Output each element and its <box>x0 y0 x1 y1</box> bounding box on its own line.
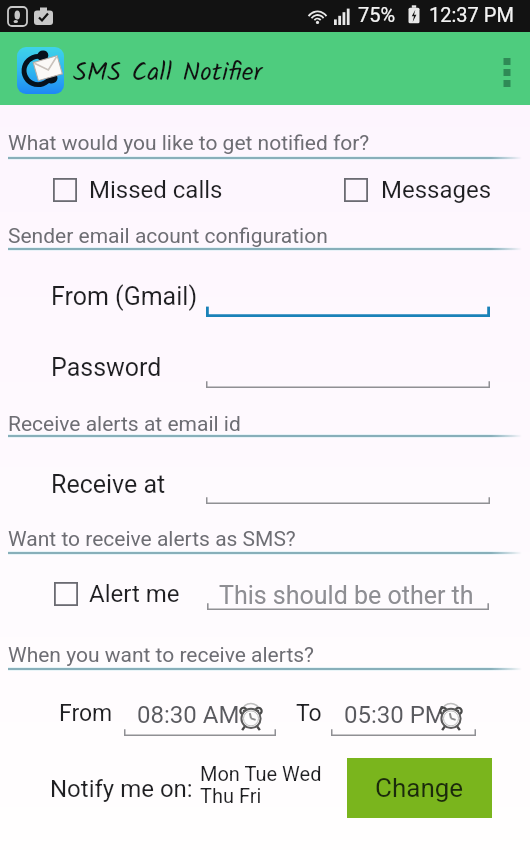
staticText: Password <box>51 353 162 382</box>
staticText: Receive at <box>51 470 166 499</box>
staticText: From <box>59 700 113 727</box>
staticText: Mon Tue Wed Thu Fri <box>200 762 326 808</box>
staticText: Notify me on: <box>50 775 193 803</box>
staticText: 05:30 PM <box>344 701 446 729</box>
staticText: Alert me <box>89 580 180 608</box>
button[interactable]: 05:30 PM <box>331 700 476 736</box>
staticText: Missed calls <box>89 176 223 204</box>
button[interactable]: Missed calls <box>49 173 224 205</box>
staticText: Receive alerts at email id <box>8 412 241 437</box>
button[interactable] <box>206 462 490 504</box>
staticText: When you want to receive alerts? <box>8 643 315 668</box>
staticText: Want to receive alerts as SMS? <box>8 527 296 552</box>
staticText: What would you like to get notified for? <box>8 131 370 156</box>
button[interactable] <box>206 346 490 388</box>
staticText: This should be other th <box>219 581 474 610</box>
button[interactable]: Alert me <box>50 578 185 610</box>
button[interactable]: Change <box>347 758 492 818</box>
button[interactable]: 08:30 AM <box>124 700 276 736</box>
staticText: 08:30 AM <box>137 701 240 729</box>
button[interactable]: Messages <box>340 173 495 205</box>
staticText: SMS Call Notifier <box>73 52 263 93</box>
button[interactable]: More options <box>484 32 530 105</box>
staticText: 75% <box>358 3 396 26</box>
staticText: Messages <box>381 176 492 204</box>
button[interactable]: This should be other th <box>207 572 489 610</box>
staticText: Sender email acount configuration <box>8 224 328 249</box>
button[interactable] <box>206 275 490 317</box>
staticText: Change <box>375 773 464 803</box>
staticText: 12:37 PM <box>429 3 514 26</box>
staticText: From (Gmail) <box>51 282 198 311</box>
staticText: To <box>296 700 322 727</box>
